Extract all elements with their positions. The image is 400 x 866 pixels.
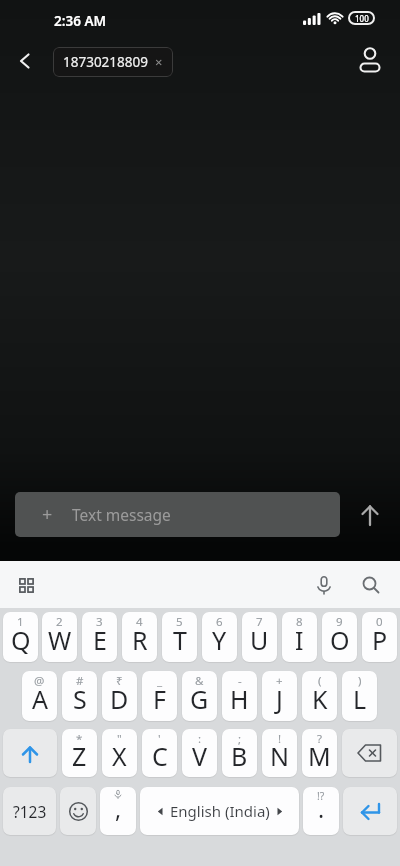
staticText: K bbox=[312, 682, 328, 716]
staticText: 2 bbox=[56, 614, 63, 630]
staticText: E bbox=[93, 623, 107, 657]
button[interactable]: ' bbox=[142, 729, 177, 777]
button[interactable]: English (India) bbox=[140, 787, 299, 835]
button[interactable]: 8 bbox=[282, 612, 317, 662]
button[interactable] bbox=[352, 40, 388, 80]
staticText: Y bbox=[212, 623, 227, 657]
staticText: + bbox=[276, 673, 283, 689]
button[interactable]: _ bbox=[142, 671, 177, 721]
staticText: English (India) bbox=[170, 801, 270, 821]
staticText: 6 bbox=[216, 614, 223, 630]
button[interactable]: , bbox=[100, 787, 136, 835]
staticText: P bbox=[372, 623, 388, 657]
staticText: 3 bbox=[96, 614, 103, 630]
staticText: , bbox=[115, 793, 122, 824]
staticText: Q bbox=[11, 623, 31, 657]
button[interactable]: ( bbox=[302, 671, 337, 721]
button[interactable]: 18730218809 bbox=[53, 47, 173, 77]
staticText: & bbox=[195, 673, 204, 689]
staticText: . bbox=[318, 793, 325, 824]
button[interactable]: + bbox=[262, 671, 297, 721]
button[interactable]: + bbox=[15, 492, 340, 537]
button[interactable]: ! bbox=[262, 729, 297, 777]
button[interactable]: ?123 bbox=[3, 787, 56, 835]
staticText: 0 bbox=[376, 614, 383, 630]
button[interactable]: ; bbox=[222, 729, 257, 777]
staticText: ) bbox=[358, 673, 362, 689]
staticText: 18730218809 bbox=[63, 53, 148, 71]
button[interactable]: 1 bbox=[3, 612, 38, 662]
staticText: M bbox=[308, 739, 331, 773]
staticText: _ bbox=[157, 673, 163, 689]
staticText: ?123 bbox=[13, 801, 47, 822]
staticText: 100 bbox=[355, 13, 369, 24]
button[interactable]: @ bbox=[22, 671, 57, 721]
staticText: : bbox=[198, 731, 202, 747]
staticText: 1 bbox=[17, 614, 24, 630]
staticText: J bbox=[276, 682, 283, 716]
staticText: R bbox=[132, 623, 148, 657]
button[interactable]: 0 bbox=[362, 612, 397, 662]
staticText: S bbox=[73, 682, 87, 716]
button[interactable]: ₹ bbox=[102, 671, 137, 721]
button[interactable]: ) bbox=[342, 671, 377, 721]
button[interactable]: 4 bbox=[122, 612, 157, 662]
staticText: W bbox=[48, 623, 72, 657]
staticText: V bbox=[192, 739, 208, 773]
staticText: C bbox=[152, 739, 168, 773]
staticText: # bbox=[76, 673, 84, 689]
button[interactable]: 9 bbox=[322, 612, 357, 662]
button[interactable] bbox=[353, 567, 389, 603]
staticText: G bbox=[190, 682, 209, 716]
staticText: U bbox=[250, 623, 269, 657]
button[interactable]: & bbox=[182, 671, 217, 721]
staticText: H bbox=[230, 682, 249, 716]
staticText: × bbox=[155, 53, 163, 71]
button[interactable] bbox=[8, 567, 44, 603]
staticText: L bbox=[353, 682, 367, 716]
staticText: X bbox=[112, 739, 127, 773]
button[interactable]: ? bbox=[302, 729, 337, 777]
button[interactable]: - bbox=[222, 671, 257, 721]
button[interactable]: 6 bbox=[202, 612, 237, 662]
button[interactable] bbox=[60, 787, 96, 835]
staticText: ( bbox=[318, 673, 322, 689]
button[interactable] bbox=[342, 729, 397, 777]
staticText: I bbox=[295, 623, 304, 657]
staticText: 2:36 AM bbox=[54, 12, 107, 30]
button[interactable]: # bbox=[62, 671, 97, 721]
button[interactable]: 5 bbox=[162, 612, 197, 662]
staticText: A bbox=[32, 682, 48, 716]
staticText: T bbox=[173, 623, 187, 657]
staticText: F bbox=[153, 682, 166, 716]
staticText: - bbox=[238, 673, 242, 689]
button[interactable]: " bbox=[102, 729, 137, 777]
staticText: !? bbox=[317, 789, 325, 803]
button[interactable] bbox=[306, 567, 342, 603]
button[interactable]: 2 bbox=[42, 612, 77, 662]
staticText: ? bbox=[317, 731, 322, 747]
staticText: + bbox=[42, 502, 53, 527]
staticText: 8 bbox=[296, 614, 303, 630]
button[interactable]: !? bbox=[303, 787, 339, 835]
staticText: ' bbox=[158, 731, 161, 747]
staticText: O bbox=[330, 623, 350, 657]
staticText: N bbox=[270, 739, 290, 773]
button[interactable]: 3 bbox=[82, 612, 117, 662]
staticText: ; bbox=[238, 731, 242, 747]
staticText: B bbox=[231, 739, 248, 773]
button[interactable] bbox=[8, 44, 42, 78]
staticText: " bbox=[117, 731, 122, 747]
staticText: 5 bbox=[176, 614, 183, 630]
button[interactable] bbox=[343, 787, 397, 835]
button[interactable]: : bbox=[182, 729, 217, 777]
staticText: D bbox=[110, 682, 129, 716]
staticText: ! bbox=[278, 731, 282, 747]
button[interactable] bbox=[3, 729, 57, 777]
button[interactable]: * bbox=[62, 729, 97, 777]
button[interactable]: 7 bbox=[242, 612, 277, 662]
staticText: Z bbox=[72, 739, 87, 773]
staticText: 9 bbox=[336, 614, 343, 630]
staticText: Text message bbox=[72, 504, 171, 525]
button[interactable] bbox=[350, 495, 390, 535]
